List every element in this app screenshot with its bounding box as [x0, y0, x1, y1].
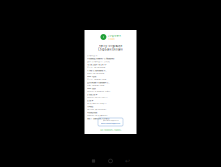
staticText: 13.05.2024 18:24:17 [87, 63, 106, 66]
staticText: Чек по операции [98, 44, 122, 48]
staticText: 0,00 ₽ [87, 99, 93, 102]
staticText: 174902 [87, 105, 93, 108]
button[interactable]: Home [102, 156, 119, 166]
staticText: 900 / sberbank.ru/help [87, 117, 109, 120]
staticText: СУММА В ВАЛЮТЕ СЧЁТА [87, 90, 110, 93]
staticText: Как проверить подпись [100, 128, 121, 131]
staticText: СЛУЖБА ПОДДЕРЖКИ [87, 114, 108, 117]
staticText: НОМЕР ДОКУМЕНТА [87, 108, 106, 111]
staticText: СберБанк [108, 34, 121, 37]
staticText: СУММА КОМИССИИ [87, 96, 108, 99]
staticText: ФИО ПОЛУЧАТЕЛЯ [87, 66, 105, 69]
staticText: ↩ [125, 157, 130, 164]
staticText: **** 8301 [87, 87, 96, 90]
staticText: Онлайн [108, 37, 115, 40]
button[interactable]: Recent apps [85, 156, 102, 166]
staticText: 4159827306 [87, 111, 97, 114]
staticText: Перевод клиенту СберБанка [87, 57, 114, 60]
staticText: ДОКУМЕНТ ПОДПИСАН [102, 119, 118, 121]
staticText: СберБанк Онлайн [98, 48, 123, 51]
staticText: ОПЕРАЦИЯ [87, 54, 97, 57]
staticText: КАРТА ПОЛУЧАТЕЛЯ [87, 72, 104, 75]
staticText: ЭЛЕКТРОННОЙ ПОДПИСЬЮ [100, 122, 120, 124]
staticText: Анна Сергеевна К. [87, 69, 107, 72]
button[interactable]: Back [119, 156, 136, 166]
staticText: ДАТА ОПЕРАЦИИ (МСК) [87, 60, 110, 63]
staticText: Дмитрий Павлович С. [87, 81, 110, 84]
staticText: ФИО ОТПРАВИТЕЛЯ [87, 78, 106, 81]
staticText: КОД АВТОРИЗАЦИИ [87, 102, 107, 105]
button[interactable]: Как проверить подпись [100, 128, 121, 131]
staticText: 3 500,00 ₽ [87, 93, 97, 96]
staticText: **** 4278 [87, 75, 96, 78]
staticText: СЧЁТ ОТПРАВИТЕЛЯ [87, 84, 104, 87]
